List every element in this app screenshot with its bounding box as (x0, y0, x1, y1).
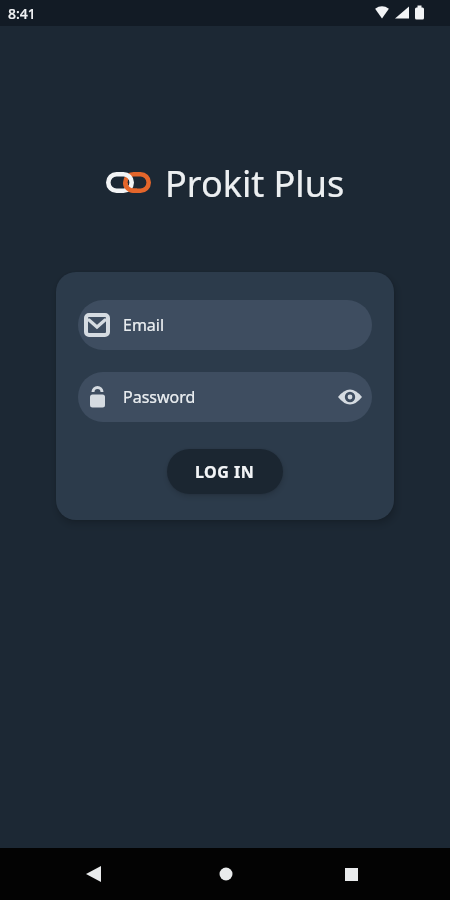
button[interactable]: Email (78, 300, 372, 350)
button[interactable]: Password (78, 372, 372, 422)
button[interactable]: LOG IN (167, 449, 283, 494)
staticText: Email (123, 314, 165, 336)
button[interactable] (336, 383, 364, 411)
staticText: Prokit Plus (165, 159, 345, 208)
staticText: 8:41 (8, 4, 36, 23)
button[interactable] (327, 850, 375, 898)
staticText: Password (123, 386, 196, 408)
staticText: LOG IN (195, 461, 255, 483)
button[interactable] (70, 850, 118, 898)
button[interactable] (202, 850, 250, 898)
